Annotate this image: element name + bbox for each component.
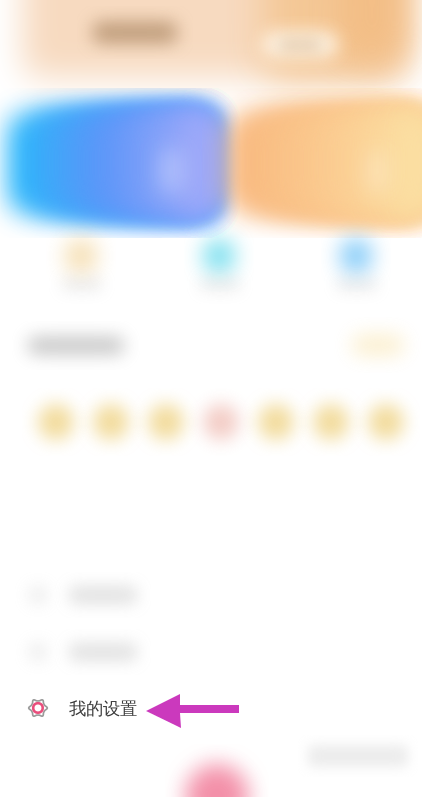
button[interactable]: Category 3 (143, 398, 189, 448)
button[interactable]: Category 7 (363, 398, 409, 448)
button[interactable]: Category 4 (198, 398, 244, 448)
staticText: 我的设置 (69, 698, 137, 719)
button[interactable]: Menu item 1 (0, 571, 422, 619)
button[interactable]: Category 6 (308, 398, 354, 448)
button[interactable]: Menu item 2 (0, 628, 422, 676)
button[interactable]: More (346, 330, 412, 360)
button[interactable]: Quick action 2 (186, 236, 286, 306)
button[interactable]: Category 5 (253, 398, 299, 448)
button[interactable]: Quick action 1 (48, 236, 148, 306)
button[interactable]: 我的设置 (0, 685, 422, 733)
button[interactable]: Category 1 (33, 398, 79, 448)
button[interactable]: Category 2 (88, 398, 134, 448)
button[interactable]: Quick action 3 (323, 236, 422, 306)
